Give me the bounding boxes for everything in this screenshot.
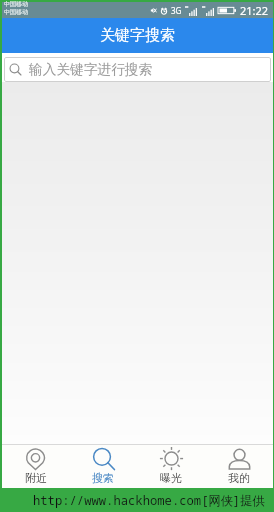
staticText: 21:22 [240,3,269,18]
staticText: 搜索 [92,471,114,485]
staticText: 曝光 [160,471,182,485]
staticText: 我的 [228,471,250,485]
staticText: 中国移动 [4,8,28,16]
staticText: http://www.hackhome.com[网侠]提供 [33,492,265,509]
staticText: 中国移动 [4,0,28,8]
button[interactable]: Mine [205,445,273,488]
button[interactable]: Search [69,445,137,488]
staticText: 3G [171,5,182,16]
staticText: 关键字搜索 [100,26,175,45]
button[interactable]: Nearby [2,445,69,488]
button[interactable]: 输入关键字进行搜索 [4,57,271,82]
button[interactable]: Exposure [137,445,205,488]
staticText: 输入关键字进行搜索 [29,61,153,78]
staticText: 附近 [25,471,47,485]
